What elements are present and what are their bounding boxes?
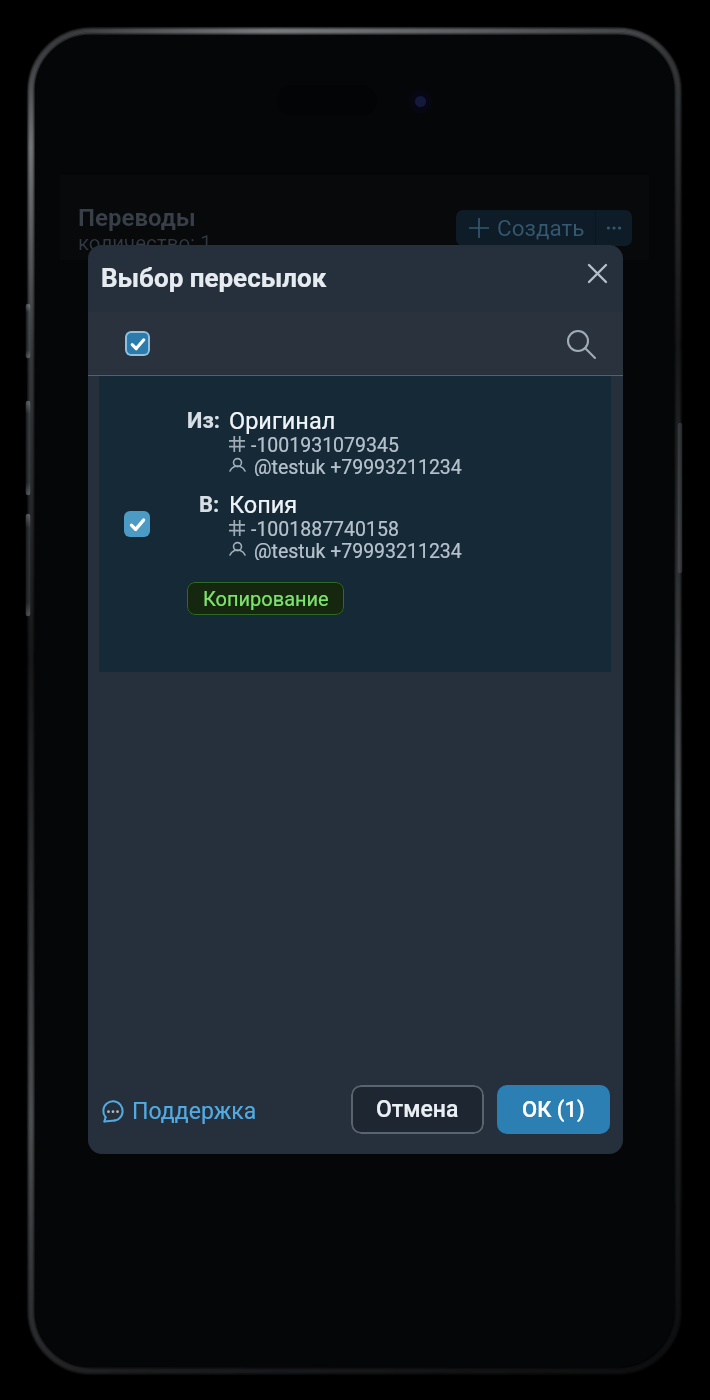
button[interactable]: Close (576, 252, 618, 294)
staticText: количество: 1 (78, 231, 212, 255)
staticText: В: (199, 492, 220, 516)
button[interactable]: Создать (456, 210, 595, 246)
button[interactable]: Search (88, 312, 623, 374)
staticText: Копирование (203, 587, 329, 610)
button[interactable]: Из: (99, 376, 611, 672)
staticText: Копия (229, 491, 298, 519)
staticText: Создать (497, 215, 585, 241)
button[interactable] (125, 331, 150, 356)
staticText: Из: (187, 408, 220, 432)
staticText: Оригинал (229, 407, 336, 435)
staticText: ОК (1) (522, 1097, 585, 1123)
staticText: Отмена (376, 1096, 459, 1123)
button[interactable]: Search (567, 330, 597, 360)
button[interactable]: ОК (1) (497, 1085, 610, 1134)
staticText: Переводы (78, 204, 196, 232)
button[interactable]: Отмена (351, 1085, 484, 1134)
button[interactable]: Поддержка (98, 1088, 257, 1134)
button[interactable]: Копирование (187, 582, 344, 615)
button[interactable] (124, 511, 150, 537)
staticText: -1001887740158 (251, 518, 399, 538)
staticText: Поддержка (132, 1098, 257, 1125)
staticText: @testuk +79993211234 (254, 540, 462, 560)
staticText: Выбор пересылок (101, 263, 327, 293)
staticText: -1001931079345 (251, 434, 399, 454)
staticText: @testuk +79993211234 (254, 456, 462, 476)
button[interactable]: More options (596, 210, 632, 246)
